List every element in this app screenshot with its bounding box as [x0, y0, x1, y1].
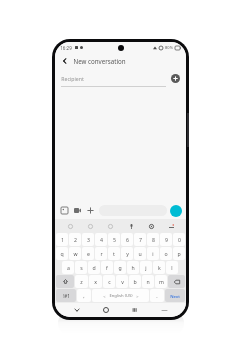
staticText: e: [87, 250, 90, 257]
button[interactable]: 8: [147, 233, 159, 246]
button[interactable]: h: [127, 261, 139, 274]
button[interactable]: !#1: [56, 289, 76, 302]
button[interactable]: p: [173, 247, 185, 260]
button[interactable]: Shift: [56, 275, 74, 288]
button[interactable]: Gallery: [59, 205, 70, 216]
button[interactable]: k: [153, 261, 165, 274]
staticText: v: [121, 278, 124, 285]
staticText: d: [92, 264, 96, 271]
button[interactable]: More options: [85, 205, 96, 216]
staticText: r: [100, 250, 103, 257]
button[interactable]: v: [116, 275, 128, 288]
staticText: Recipient: [61, 75, 84, 82]
staticText: m: [159, 278, 164, 285]
staticText: x: [94, 278, 97, 285]
button[interactable]: Hide keyboard: [157, 303, 171, 317]
button[interactable]: r: [95, 247, 107, 260]
button[interactable]: t: [108, 247, 120, 260]
staticText: h: [131, 264, 135, 271]
staticText: English (US): [109, 293, 133, 299]
button[interactable]: f: [101, 261, 113, 274]
staticText: 1: [61, 236, 64, 243]
button[interactable]: n: [142, 275, 154, 288]
staticText: 8: [152, 236, 155, 243]
staticText: y: [126, 250, 129, 257]
staticText: s: [80, 264, 83, 271]
button[interactable]: 1: [56, 233, 68, 246]
staticText: w: [73, 250, 78, 257]
button[interactable]: 9: [160, 233, 172, 246]
button[interactable]: e: [82, 247, 94, 260]
button[interactable]: Back: [70, 303, 84, 317]
staticText: f: [106, 264, 108, 271]
staticText: 9: [165, 236, 168, 243]
staticText: <: [103, 294, 106, 299]
staticText: 2: [74, 236, 77, 243]
button[interactable]: d: [88, 261, 100, 274]
button[interactable]: <: [92, 289, 149, 302]
staticText: b: [133, 278, 137, 285]
button[interactable]: b: [129, 275, 141, 288]
button[interactable]: .: [150, 289, 164, 302]
button[interactable]: ,: [77, 289, 91, 302]
button[interactable]: Keyboard tool 5: [146, 221, 156, 231]
button[interactable]: j: [140, 261, 152, 274]
button[interactable]: g: [114, 261, 126, 274]
button[interactable]: a: [62, 261, 74, 274]
button[interactable]: Next: [165, 289, 185, 302]
button[interactable]: Keyboard tool 4: [126, 221, 136, 231]
staticText: k: [158, 264, 161, 271]
button[interactable]: w: [69, 247, 81, 260]
staticText: ,: [83, 292, 85, 299]
staticText: i: [152, 250, 154, 257]
staticText: l: [171, 264, 173, 271]
button[interactable]: 0: [173, 233, 185, 246]
button[interactable]: 4: [95, 233, 107, 246]
button[interactable]: Keyboard tool 6: [166, 221, 176, 231]
staticText: c: [108, 278, 111, 285]
button[interactable]: z: [75, 275, 88, 288]
button[interactable]: 2: [69, 233, 81, 246]
staticText: n: [146, 278, 150, 285]
staticText: .: [156, 292, 158, 299]
button[interactable]: y: [121, 247, 133, 260]
staticText: 7: [139, 236, 142, 243]
staticText: a: [67, 264, 70, 271]
staticText: j: [145, 264, 147, 271]
button[interactable]: u: [134, 247, 146, 260]
staticText: z: [80, 278, 83, 285]
button[interactable]: o: [160, 247, 172, 260]
staticText: 80%: [165, 45, 173, 50]
button[interactable]: Home: [99, 303, 113, 317]
staticText: New conversation: [73, 57, 126, 65]
staticText: Next: [170, 293, 180, 299]
staticText: 0: [178, 236, 181, 243]
button[interactable]: Recents: [128, 303, 142, 317]
button[interactable]: 3: [82, 233, 94, 246]
staticText: !#1: [63, 293, 70, 299]
button[interactable]: Send: [170, 205, 182, 217]
button[interactable]: s: [75, 261, 87, 274]
button[interactable]: 6: [121, 233, 133, 246]
button[interactable]: m: [155, 275, 167, 288]
button[interactable]: 5: [108, 233, 120, 246]
button[interactable]: Backspace: [168, 275, 185, 288]
staticText: 4: [100, 236, 103, 243]
button[interactable]: x: [89, 275, 102, 288]
button[interactable]: Camera: [72, 205, 83, 216]
button[interactable]: c: [103, 275, 115, 288]
staticText: g: [118, 264, 122, 271]
button[interactable]: q: [56, 247, 68, 260]
button[interactable]: Add recipient: [170, 73, 181, 84]
button[interactable]: 7: [134, 233, 146, 246]
staticText: >: [136, 294, 139, 299]
button[interactable]: i: [147, 247, 159, 260]
button[interactable]: Keyboard tool 3: [105, 221, 115, 231]
staticText: 5: [113, 236, 116, 243]
button[interactable]: Keyboard tool 2: [85, 221, 95, 231]
staticText: p: [177, 250, 181, 257]
button[interactable]: Back: [59, 55, 71, 67]
button[interactable]: l: [166, 261, 178, 274]
button[interactable]: Keyboard tool 1: [65, 221, 75, 231]
